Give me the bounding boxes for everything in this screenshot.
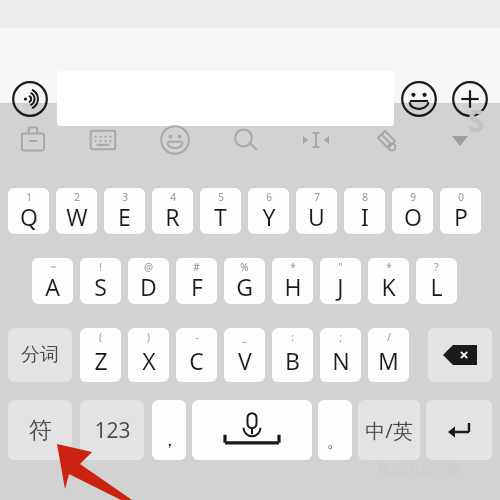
button[interactable]: ( xyxy=(80,328,121,382)
staticText: I xyxy=(361,201,369,232)
button[interactable]: ~ xyxy=(32,258,73,304)
button[interactable]: - xyxy=(176,328,217,382)
button[interactable]: / xyxy=(368,328,409,382)
button[interactable]: 2 xyxy=(56,188,97,234)
staticText: X xyxy=(142,345,156,376)
staticText: D xyxy=(140,271,157,302)
button[interactable]: * xyxy=(272,258,313,304)
staticText: 1 xyxy=(26,190,32,204)
button[interactable]: Enter xyxy=(426,400,492,460)
button[interactable]: 3 xyxy=(104,188,145,234)
button[interactable]: ? xyxy=(416,258,457,304)
staticText: * xyxy=(290,260,296,274)
button[interactable]: : xyxy=(272,328,313,382)
staticText: 。 xyxy=(327,431,344,452)
staticText: _ xyxy=(242,330,247,344)
button[interactable]: _ xyxy=(224,328,265,382)
staticText: % xyxy=(240,260,249,274)
button[interactable]: Search xyxy=(223,118,267,162)
staticText: U xyxy=(308,201,325,232)
staticText: 分词 xyxy=(21,343,59,367)
staticText: S xyxy=(94,271,107,302)
staticText: Q xyxy=(20,201,38,232)
button[interactable]: Theme xyxy=(364,118,408,162)
staticText: R xyxy=(165,201,180,232)
staticText: 2 xyxy=(74,190,80,204)
staticText: C xyxy=(189,345,204,376)
button[interactable]: Keyboard xyxy=(81,118,125,162)
staticText: " xyxy=(338,260,343,274)
button[interactable]: ) xyxy=(128,328,169,382)
button[interactable]: Voice message xyxy=(12,81,48,117)
button[interactable]: ， xyxy=(152,400,186,460)
staticText: - xyxy=(195,330,199,344)
staticText: 123 xyxy=(94,416,131,445)
staticText: 5 xyxy=(218,190,224,204)
staticText: A xyxy=(45,271,60,302)
staticText: ! xyxy=(99,260,102,274)
staticText: J xyxy=(337,271,344,302)
button[interactable]: # xyxy=(176,258,217,304)
staticText: ~ xyxy=(50,260,56,274)
button[interactable]: 4 xyxy=(152,188,193,234)
staticText: 6 xyxy=(266,190,272,204)
button[interactable]: Backspace xyxy=(428,328,492,382)
button[interactable]: 符 xyxy=(8,400,72,460)
staticText: 7 xyxy=(314,190,320,204)
staticText: K xyxy=(381,271,396,302)
staticText: B xyxy=(285,345,300,376)
staticText: : xyxy=(291,330,294,344)
button[interactable]: 9 xyxy=(392,188,433,234)
button[interactable]: 123 xyxy=(80,400,144,460)
button[interactable]: 中/英 xyxy=(358,400,420,460)
button[interactable]: % xyxy=(224,258,265,304)
button[interactable]: 6 xyxy=(248,188,289,234)
staticText: 4 xyxy=(170,190,176,204)
staticText: 符 xyxy=(29,416,52,445)
button[interactable]: Cursor xyxy=(294,118,338,162)
staticText: M xyxy=(378,345,399,376)
button[interactable]: Space, voice input xyxy=(192,400,312,460)
staticText: ( xyxy=(99,330,102,344)
staticText: * xyxy=(386,260,392,274)
button[interactable]: 。 xyxy=(318,400,352,460)
button[interactable]: ! xyxy=(80,258,121,304)
staticText: ? xyxy=(434,260,439,274)
staticText: P xyxy=(454,201,468,232)
button[interactable]: Toolbox xyxy=(11,118,55,162)
button[interactable]: 5 xyxy=(200,188,241,234)
staticText: G xyxy=(236,271,253,302)
staticText: ， xyxy=(160,428,179,452)
button[interactable]: 7 xyxy=(296,188,337,234)
staticText: N xyxy=(332,345,350,376)
staticText: T xyxy=(214,201,227,232)
staticText: 0 xyxy=(458,190,464,204)
staticText: W xyxy=(66,201,88,232)
staticText: @ xyxy=(144,260,153,274)
staticText: Z xyxy=(94,345,108,376)
button[interactable]: @ xyxy=(128,258,169,304)
button[interactable]: Emoji xyxy=(153,118,197,162)
button[interactable]: ; xyxy=(320,328,361,382)
staticText: 3 xyxy=(122,190,128,204)
staticText: / xyxy=(387,330,391,344)
button[interactable]: 0 xyxy=(440,188,481,234)
button[interactable]: * xyxy=(368,258,409,304)
staticText: V xyxy=(238,345,252,376)
button[interactable]: More xyxy=(438,118,482,162)
staticText: # xyxy=(193,260,200,274)
staticText: ) xyxy=(147,330,150,344)
button[interactable]: 8 xyxy=(344,188,385,234)
staticText: H xyxy=(284,271,302,302)
staticText: F xyxy=(191,271,203,302)
button[interactable]: " xyxy=(320,258,361,304)
staticText: L xyxy=(430,271,443,302)
button[interactable]: More xyxy=(452,81,488,117)
staticText: O xyxy=(404,201,422,232)
button[interactable]: Emoji xyxy=(401,81,437,117)
button[interactable]: 分词 xyxy=(8,328,72,382)
staticText: ; xyxy=(339,330,342,344)
staticText: Y xyxy=(262,201,276,232)
button[interactable]: 1 xyxy=(8,188,49,234)
